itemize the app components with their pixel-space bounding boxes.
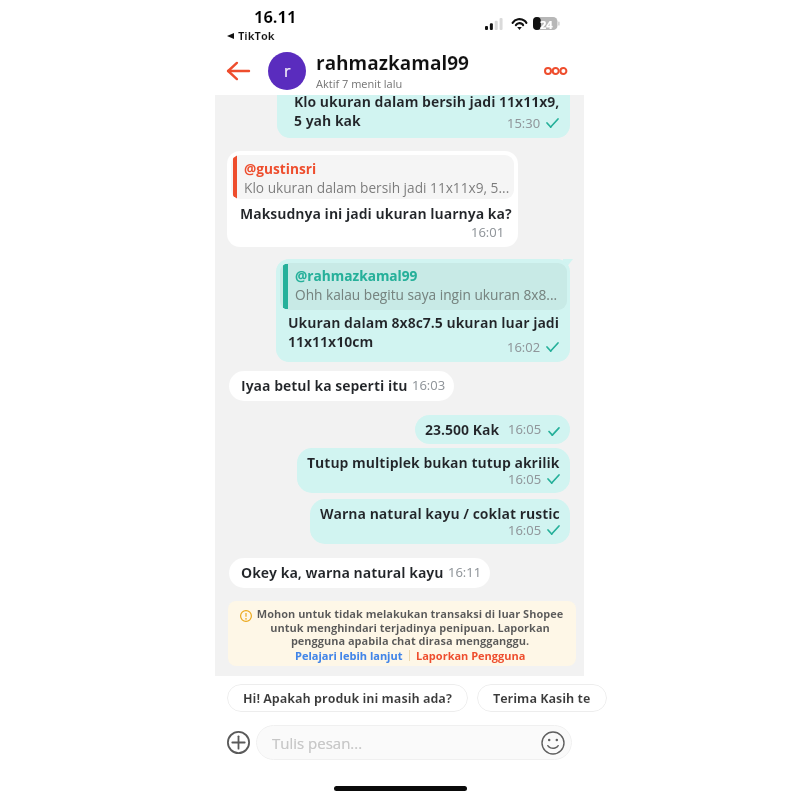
staticText: 15:30 xyxy=(507,114,541,132)
button[interactable]: Iyaa betul ka seperti itu xyxy=(229,371,454,401)
button[interactable]: Back xyxy=(220,54,256,88)
button[interactable]: Terima Kasih te xyxy=(477,684,607,712)
button[interactable]: 23.500 Kak xyxy=(415,415,570,444)
staticText: Mohon untuk tidak melakukan transaksi di… xyxy=(255,606,565,648)
staticText: TikTok xyxy=(238,28,275,43)
staticText: 16:11 xyxy=(448,563,482,581)
staticText: r xyxy=(284,60,291,82)
staticText: Tutup multiplek bukan tutup akrilik xyxy=(307,453,560,472)
staticText: Tulis pesan... xyxy=(272,733,363,753)
button[interactable]: Add attachment xyxy=(223,729,253,755)
staticText: Okey ka, warna natural kayu xyxy=(241,563,444,582)
button[interactable]: Warna natural kayu / coklat rustic xyxy=(310,499,570,544)
button[interactable]: Emoji xyxy=(540,730,566,756)
staticText: Warna natural kayu / coklat rustic xyxy=(320,504,560,523)
staticText: 24 xyxy=(540,17,553,30)
staticText: Klo ukuran dalam bersih jadi 11x11x9, 5.… xyxy=(244,178,510,197)
staticText: Iyaa betul ka seperti itu xyxy=(241,376,408,395)
staticText: 23.500 Kak xyxy=(425,420,500,439)
staticText: Klo ukuran dalam bersih jadi 11x11x9, 5 … xyxy=(294,95,560,130)
button[interactable]: Klo ukuran dalam bersih jadi 11x11x9, 5 … xyxy=(277,95,570,138)
staticText: @rahmazkamal99 xyxy=(295,266,418,285)
button[interactable]: More options xyxy=(544,55,580,87)
staticText: rahmazkamal99 xyxy=(316,50,469,76)
staticText: 16:05 xyxy=(508,420,542,438)
staticText: 16:01 xyxy=(471,223,505,241)
staticText: 16:05 xyxy=(508,521,542,539)
button[interactable]: Okey ka, warna natural kayu xyxy=(229,558,490,588)
button[interactable]: @rahmazkamal99 xyxy=(276,259,570,362)
staticText: Ukuran dalam 8x8c7.5 ukuran luar jadi 11… xyxy=(288,313,560,351)
staticText: Maksudnya ini jadi ukuran luarnya ka? xyxy=(240,204,512,223)
staticText: 16:05 xyxy=(508,470,542,488)
staticText: 16:03 xyxy=(412,376,446,394)
button[interactable]: @gustinsri xyxy=(227,151,518,247)
staticText: Ohh kalau begitu saya ingin ukuran 8x8..… xyxy=(295,285,558,304)
staticText: Terima Kasih te xyxy=(493,690,591,707)
staticText: 16:02 xyxy=(507,338,541,356)
button[interactable]: Tulis pesan... xyxy=(256,725,572,760)
staticText: Hi! Apakah produk ini masih ada? xyxy=(243,690,452,707)
staticText: 16.11 xyxy=(254,5,297,27)
staticText: @gustinsri xyxy=(244,159,317,178)
button[interactable]: Pelajari lebih lanjut xyxy=(295,648,403,663)
button[interactable]: Tutup multiplek bukan tutup akrilik xyxy=(297,448,570,493)
button[interactable]: Hi! Apakah produk ini masih ada? xyxy=(227,684,468,712)
button[interactable]: Laporkan Pengguna xyxy=(416,648,526,663)
staticText: Aktif 7 menit lalu xyxy=(316,76,403,91)
